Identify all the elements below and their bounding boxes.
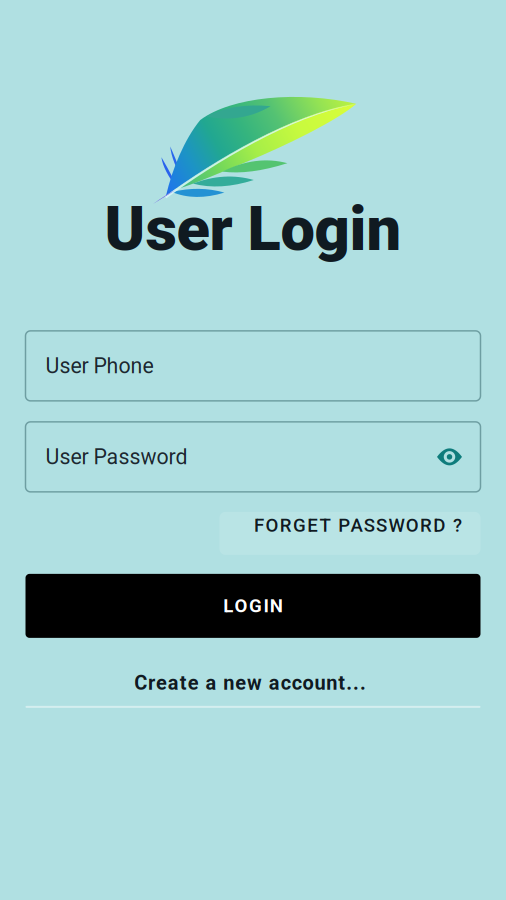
button[interactable]: User Password — [25, 422, 480, 492]
button[interactable]: User Phone — [25, 331, 480, 401]
button[interactable]: LOGIN — [25, 574, 480, 638]
staticText: Create a new account․․․ — [134, 671, 372, 695]
staticText: LOGIN — [217, 595, 289, 617]
staticText: User Phone — [45, 353, 153, 378]
staticText: FORGET PASSWORD ? — [248, 514, 468, 536]
staticText: User Login — [104, 193, 401, 265]
staticText: User Password — [45, 444, 187, 469]
button[interactable]: FORGET PASSWORD ? — [219, 512, 480, 555]
button[interactable]: Create a new account․․․ — [25, 660, 480, 706]
